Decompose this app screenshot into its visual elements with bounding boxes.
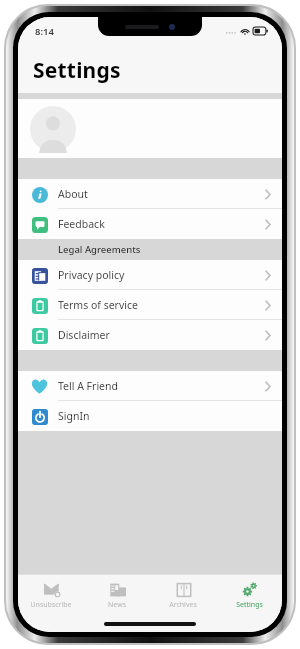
button[interactable]: Privacy policy — [18, 260, 282, 290]
button[interactable]: Settings — [216, 575, 282, 615]
staticText: Legal Agreements — [58, 243, 141, 256]
staticText: 8:14 — [35, 25, 54, 38]
staticText: Feedback — [58, 217, 265, 231]
button[interactable]: Unsubscribe — [18, 575, 84, 615]
button[interactable]: SignIn — [18, 401, 282, 431]
staticText: Settings — [33, 56, 121, 85]
staticText: Settings — [236, 600, 263, 610]
other: Home — [104, 622, 196, 626]
staticText: Terms of service — [58, 298, 265, 312]
staticText: Archives — [169, 600, 197, 610]
button[interactable]: Disclaimer — [18, 320, 282, 350]
button[interactable]: News — [84, 575, 150, 615]
button[interactable]: Terms of service — [18, 290, 282, 320]
staticText: News — [108, 600, 126, 610]
staticText: Privacy policy — [58, 268, 265, 282]
button[interactable]: Feedback — [18, 209, 282, 239]
button[interactable]: Tell A Friend — [18, 371, 282, 401]
button[interactable]: About — [18, 179, 282, 209]
button[interactable] — [18, 99, 282, 158]
staticText: Tell A Friend — [58, 379, 265, 393]
button[interactable]: Archives — [150, 575, 216, 615]
staticText: SignIn — [58, 409, 265, 423]
staticText: Unsubscribe — [30, 600, 72, 610]
staticText: About — [58, 187, 265, 201]
staticText: Disclaimer — [58, 328, 265, 342]
